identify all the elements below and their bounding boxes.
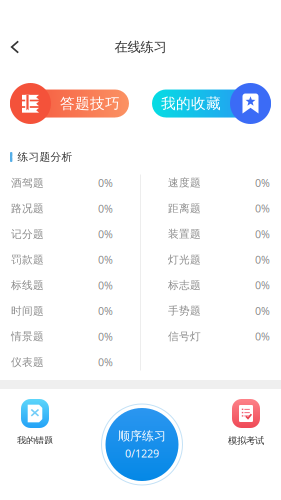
staticText: 路况题 <box>11 202 44 215</box>
staticText: 速度题 <box>168 176 201 189</box>
staticText: 0% <box>98 253 113 267</box>
button[interactable]: 我的错题 <box>0 389 70 500</box>
staticText: 练习题分析 <box>17 150 72 163</box>
staticText: 答题技巧 <box>60 94 120 112</box>
staticText: 0% <box>98 355 113 369</box>
button[interactable]: 答题技巧 <box>10 83 129 124</box>
button[interactable]: 顺序练习 <box>101 403 183 485</box>
staticText: 0% <box>98 176 113 190</box>
staticText: 0% <box>255 176 270 190</box>
staticText: 标线题 <box>11 279 44 292</box>
button[interactable]: 我的收藏 <box>152 83 271 124</box>
staticText: 0/1229 <box>125 446 159 460</box>
staticText: 装置题 <box>168 227 201 240</box>
button[interactable]: 模拟考试 <box>211 389 281 500</box>
staticText: 0% <box>255 227 270 241</box>
staticText: 酒驾题 <box>11 176 44 189</box>
staticText: 0% <box>255 278 270 292</box>
staticText: 0% <box>98 329 113 344</box>
staticText: 情景题 <box>11 330 44 343</box>
staticText: 距离题 <box>168 202 201 215</box>
staticText: 灯光题 <box>168 253 201 266</box>
staticText: 我的收藏 <box>161 94 221 112</box>
staticText: 0% <box>98 278 113 292</box>
staticText: 0% <box>98 227 113 241</box>
staticText: 记分题 <box>11 227 44 241</box>
staticText: 0% <box>255 252 270 267</box>
staticText: 时间题 <box>11 304 44 317</box>
staticText: 0% <box>255 201 270 215</box>
staticText: 0% <box>98 201 113 216</box>
staticText: 模拟考试 <box>228 435 264 446</box>
staticText: 顺序练习 <box>118 428 166 443</box>
staticText: 0% <box>255 329 270 343</box>
staticText: 0% <box>255 304 270 318</box>
staticText: 在线练习 <box>114 39 166 55</box>
button[interactable]: Back <box>0 27 30 67</box>
staticText: 信号灯 <box>168 330 201 343</box>
staticText: 罚款题 <box>11 253 44 266</box>
staticText: 我的错题 <box>17 435 53 446</box>
staticText: 仪表题 <box>11 355 44 369</box>
staticText: 0% <box>98 304 113 318</box>
staticText: 标志题 <box>168 279 201 292</box>
staticText: 手势题 <box>168 304 201 317</box>
